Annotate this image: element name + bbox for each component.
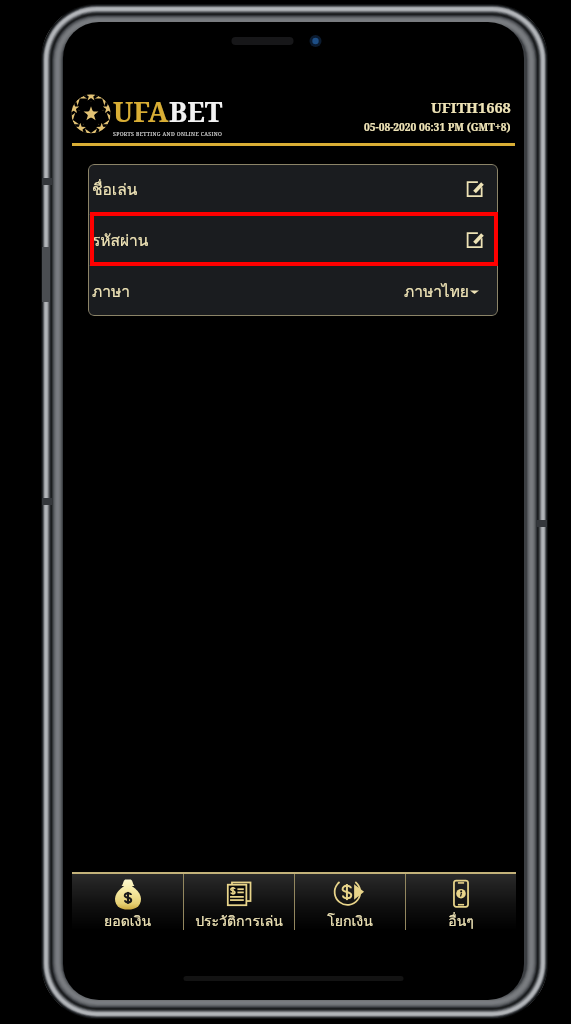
staticText: BET — [169, 93, 223, 130]
button[interactable]: ประวัติการเล่น — [184, 874, 294, 930]
staticText: ประวัติการเล่น — [195, 910, 283, 930]
staticText: อื่นๆ — [448, 910, 474, 930]
staticText: 05-08-2020 06:31 PM (GMT+8) — [364, 120, 511, 134]
staticText: ภาษา — [92, 279, 130, 304]
staticText: SPORTS BETTING AND ONLINE CASINO — [113, 130, 223, 137]
staticText: UFITH1668 — [431, 97, 511, 117]
staticText: UFA — [113, 93, 169, 130]
other: Edit ชื่อเล่น — [466, 180, 484, 198]
button[interactable]: ชื่อเล่น — [88, 164, 498, 214]
staticText: ภาษาไทย — [404, 279, 469, 304]
other: Edit รหัสผ่าน — [466, 231, 484, 249]
staticText: ชื่อเล่น — [92, 177, 138, 202]
button[interactable]: ยอดเงิน — [72, 874, 183, 930]
button[interactable]: ภาษา — [88, 266, 498, 316]
staticText: ยอดเงิน — [104, 910, 151, 930]
button[interactable]: รหัสผ่าน — [88, 215, 498, 265]
staticText: โยกเงิน — [327, 910, 373, 930]
button[interactable]: โยกเงิน — [295, 874, 405, 930]
button[interactable]: อื่นๆ — [406, 874, 516, 930]
staticText: รหัสผ่าน — [92, 228, 149, 253]
